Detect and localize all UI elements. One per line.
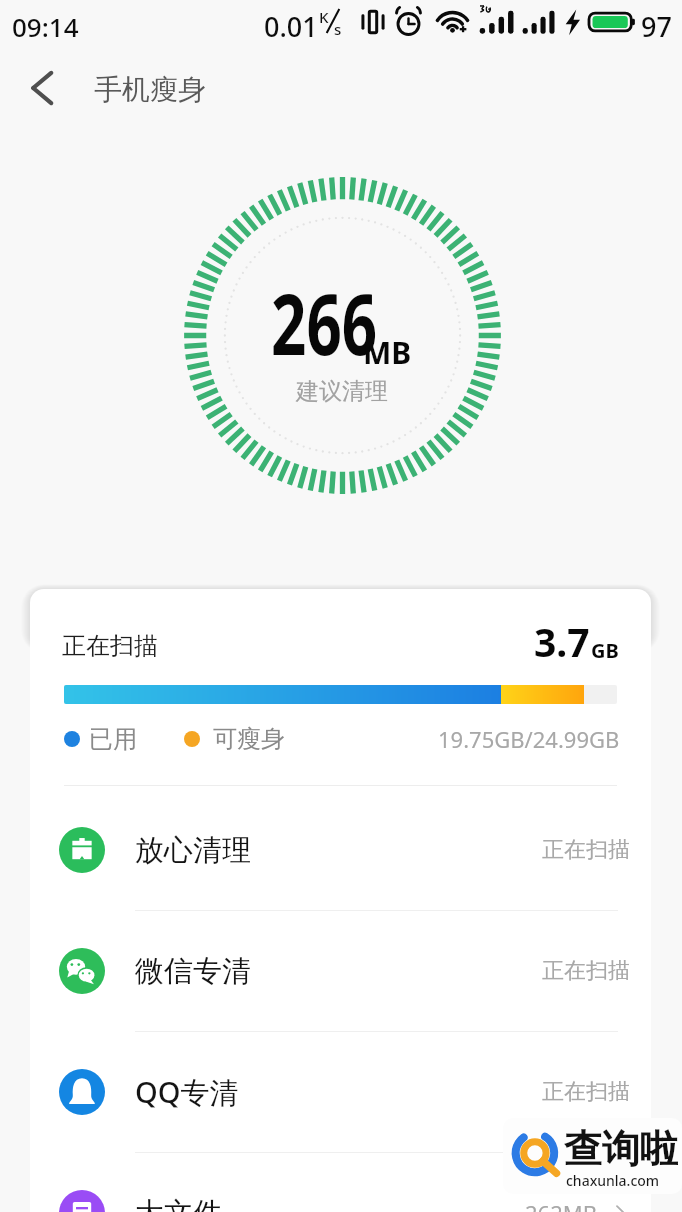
staticText: GB [591,637,619,664]
staticText: chaxunla.com [566,1171,660,1190]
staticText: 手机瘦身 [94,72,206,107]
button[interactable]: 放心清理 [30,790,651,911]
staticText: 正在扫描 [542,1078,630,1106]
button[interactable]: 微信专清 [30,911,651,1032]
staticText: 正在扫描 [542,836,630,864]
staticText: s [334,19,342,39]
staticText: 放心清理 [135,832,251,869]
button[interactable]: 266MB 建议清理 [182,175,503,496]
staticText: 正在扫描 [542,957,630,985]
staticText: 查询啦 [564,1125,678,1173]
staticText: 正在扫描 [62,631,158,661]
button[interactable]: Back [10,56,74,120]
staticText: 266 [271,264,377,380]
staticText: 0.01 [264,8,318,45]
staticText: 大文件 [135,1195,222,1212]
staticText: 19.75GB/24.99GB [438,724,620,754]
staticText: 已用 [89,724,137,754]
button[interactable]: 大文件 [30,1153,651,1212]
staticText: QQ专清 [135,1072,239,1112]
staticText: 微信专清 [135,953,251,990]
staticText: 09:14 [12,9,79,44]
button[interactable]: QQ专清 [30,1032,651,1153]
staticText: 3.7 [534,615,590,668]
staticText: 可瘦身 [213,724,285,754]
staticText: 建议清理 [296,377,388,406]
staticText: 262MB [525,1198,598,1212]
staticText: 97 [641,8,672,45]
staticText: K [319,7,329,27]
staticText: MB [363,332,412,373]
